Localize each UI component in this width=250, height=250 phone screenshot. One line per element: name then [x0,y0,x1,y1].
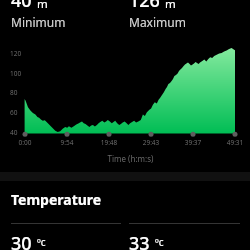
staticText: 33 [129,231,150,250]
staticText: Time (h:m:s) [105,153,156,164]
staticText: 40 [11,0,32,13]
staticText: 100 [10,69,22,78]
staticText: Temperature [11,190,102,209]
staticText: 0:00 [5,138,45,147]
staticText: 40 [10,128,18,137]
staticText: 120 [10,49,22,58]
staticText: Minimum [11,14,66,30]
staticText: ºc [155,235,164,249]
staticText: m [37,0,48,12]
button[interactable]: 40 [11,0,121,30]
staticText: 49:31 [215,138,250,147]
staticText: m [165,0,176,12]
button[interactable]: 33 [129,223,240,250]
staticText: ºc [37,235,46,249]
staticText: 30 [11,231,32,250]
staticText: 60 [10,108,18,117]
staticText: Maximum [129,14,186,30]
button[interactable]: 126 [129,0,240,30]
staticText: 39:37 [173,138,213,147]
staticText: 9:54 [47,138,87,147]
staticText: 126 [129,0,160,13]
staticText: 80 [10,88,18,97]
staticText: 29:43 [131,138,171,147]
staticText: 19:48 [89,138,129,147]
button[interactable]: 30 [11,223,121,250]
